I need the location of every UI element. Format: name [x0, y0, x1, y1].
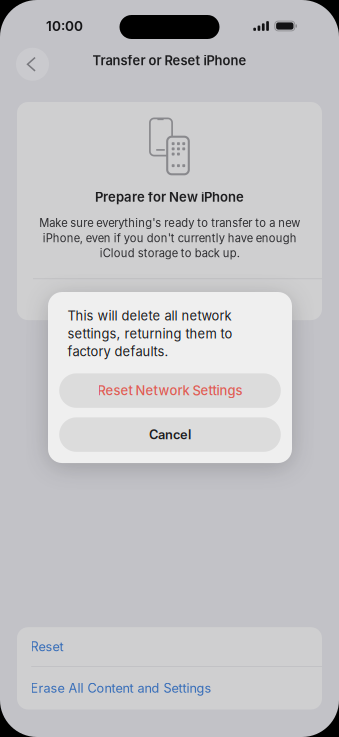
staticText: This will delete all network settings, r…: [67, 308, 232, 359]
button[interactable]: Reset Network Settings: [59, 373, 281, 408]
staticText: Prepare for New iPhone: [95, 189, 244, 205]
button[interactable]: Erase All Content and Settings: [17, 667, 322, 709]
button[interactable]: Cancel: [59, 417, 281, 452]
staticText: 10:00: [46, 18, 83, 34]
staticText: Reset Network Settings: [97, 383, 242, 398]
button[interactable]: Reset: [17, 627, 322, 666]
staticText: Make sure everything's ready to transfer…: [39, 216, 300, 260]
button[interactable]: Back: [16, 48, 49, 81]
staticText: Erase All Content and Settings: [31, 680, 212, 696]
staticText: Cancel: [149, 427, 191, 442]
staticText: Reset: [31, 639, 64, 654]
staticText: Transfer or Reset iPhone: [92, 53, 246, 68]
button[interactable]: Get Started: [17, 279, 322, 320]
